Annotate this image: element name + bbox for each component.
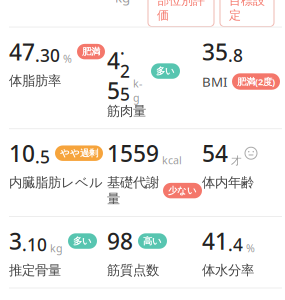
staticText: .5 (35, 145, 50, 168)
staticText: 多い (156, 65, 175, 77)
staticText: kcal (162, 153, 182, 167)
staticText: 少ない (168, 185, 197, 196)
staticText: 筋質点数 (107, 262, 159, 278)
staticText: 目標設定 (229, 0, 265, 23)
staticText: 肥満 (82, 46, 100, 57)
staticText: 内臓脂肪レベル (9, 174, 103, 191)
staticText: 才 (231, 154, 242, 167)
staticText: 41 (202, 226, 228, 256)
staticText: 3 (9, 226, 22, 256)
staticText: 10 (9, 138, 35, 168)
staticText: 98 (107, 226, 133, 256)
staticText: 体内年齢 (202, 174, 254, 191)
staticText: % (63, 51, 72, 66)
staticText: 35 (202, 37, 228, 67)
staticText: 基礎代謝量 (107, 174, 159, 207)
staticText: 体脂肪率 (9, 73, 61, 89)
staticText: 体水分率 (202, 262, 254, 278)
staticText: 54 (202, 138, 228, 168)
staticText: 多い (73, 235, 92, 247)
staticText: .25 (120, 37, 130, 106)
staticText: kg (50, 241, 63, 255)
staticText: 47 (9, 37, 35, 67)
staticText: .4 (228, 233, 243, 256)
staticText: 筋肉量 (107, 103, 146, 119)
staticText: 高い (143, 235, 162, 247)
staticText: kg (115, 0, 130, 6)
staticText: やや過剰 (60, 147, 98, 159)
staticText: 1559 (107, 138, 159, 168)
staticText: kg (133, 76, 142, 105)
staticText: % (246, 241, 255, 255)
staticText: .8 (228, 44, 243, 67)
staticText: .30 (35, 44, 60, 67)
staticText: BMI (202, 73, 228, 90)
button[interactable]: 目標設定 (220, 0, 274, 27)
staticText: 肥満(2度) (237, 75, 275, 88)
staticText: 推定骨量 (9, 262, 61, 278)
staticText: 45 (107, 45, 120, 106)
button[interactable]: 部位別評価 (148, 0, 214, 27)
staticText: .10 (22, 233, 47, 256)
staticText: 部位別評価 (157, 0, 205, 23)
